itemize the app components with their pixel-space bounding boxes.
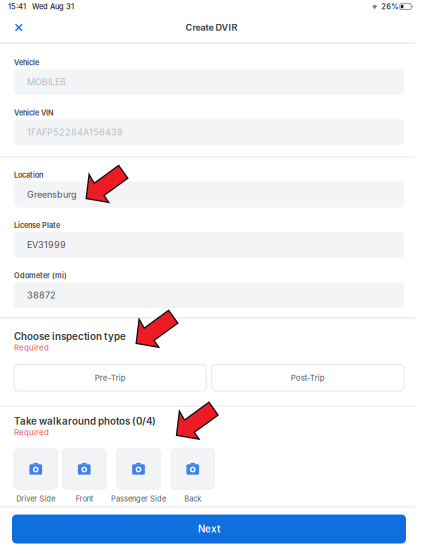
staticText: Post-Trip [291,373,325,383]
staticText: Passenger Side [111,494,166,503]
staticText: Choose inspection type [14,330,126,342]
button[interactable]: Front [62,448,106,503]
staticText: MOBILE8 [27,76,66,87]
staticText: Pre-Trip [95,373,126,383]
staticText: Back [184,494,201,503]
staticText: Required [14,343,49,352]
staticText: Front [76,494,93,503]
staticText: Take walkaround photos (0/4) [14,415,156,427]
button[interactable]: Back [171,448,214,503]
staticText: Location [14,171,43,179]
button[interactable]: Pre-Trip [14,364,206,391]
staticText: License Plate [14,221,60,230]
button[interactable]: Post-Trip [212,364,404,391]
staticText: Odometer (mi) [14,271,67,280]
button[interactable]: Passenger Side [111,448,166,503]
button[interactable]: Driver Side [14,448,57,503]
button[interactable]: Close [8,16,31,39]
staticText: 38872 [27,290,56,301]
staticText: Create DVIR [185,22,237,33]
staticText: 1FAFP52284A156438 [27,127,123,138]
staticText: Next [198,523,220,535]
staticText: 15:41 Wed Aug 31 [8,2,74,11]
staticText: Driver Side [16,494,55,503]
staticText: 26% [381,2,398,11]
staticText: Vehicle [14,58,39,67]
staticText: Vehicle VIN [14,108,54,117]
staticText: Required [14,428,49,437]
button[interactable]: Next [12,514,406,543]
staticText: EV31999 [27,239,66,250]
staticText: Greensburg [27,189,77,200]
